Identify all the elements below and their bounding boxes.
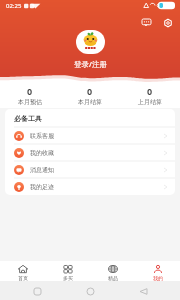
button[interactable]: Back [136, 284, 150, 298]
button[interactable]: Avatar [76, 30, 105, 54]
staticText: 精品 [108, 275, 118, 281]
staticText: 我的 [153, 275, 163, 281]
staticText: 本月结算 [78, 98, 102, 106]
staticText: 我的足迹 [30, 183, 54, 191]
staticText: 0 [147, 85, 153, 97]
staticText: 联系客服 [30, 132, 54, 140]
staticText: 0 [27, 85, 33, 97]
staticText: 多买 [63, 275, 73, 281]
button[interactable]: 登录/注册 [74, 59, 107, 69]
staticText: 本月预估 [18, 98, 42, 106]
staticText: 消息通知 [30, 166, 54, 174]
staticText: 0 [87, 85, 93, 97]
button[interactable]: 0 [120, 83, 180, 108]
button[interactable]: 我的足迹 [5, 179, 175, 195]
button[interactable]: 多买 [45, 261, 90, 281]
button[interactable]: 消息通知 [5, 162, 175, 178]
button[interactable]: 我的 [135, 261, 180, 281]
button[interactable]: 0 [0, 83, 60, 108]
button[interactable]: Recents [30, 284, 44, 298]
staticText: 02:25 [6, 2, 22, 10]
button[interactable]: Home [83, 284, 97, 298]
button[interactable]: Messages [140, 17, 153, 28]
button[interactable]: 0 [60, 83, 120, 108]
button[interactable]: 精品 [90, 261, 135, 281]
button[interactable]: 我的收藏 [5, 145, 175, 161]
staticText: 我的收藏 [30, 149, 54, 157]
staticText: 上月结算 [138, 98, 162, 106]
button[interactable]: 首页 [0, 261, 45, 281]
staticText: 必备工具 [14, 114, 42, 123]
button[interactable]: Settings [161, 17, 174, 28]
button[interactable]: 联系客服 [5, 128, 175, 144]
staticText: 首页 [18, 275, 28, 281]
